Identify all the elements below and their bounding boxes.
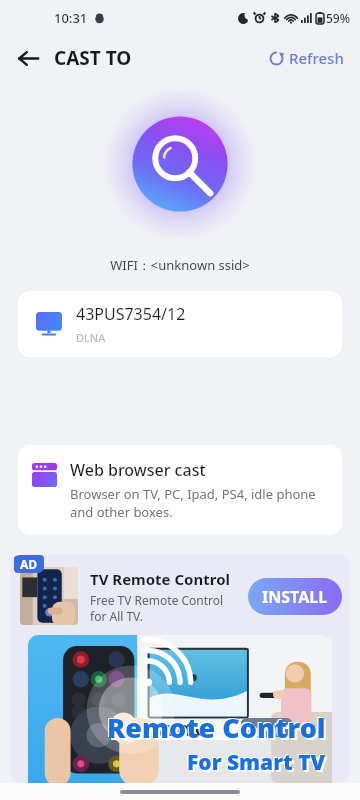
staticText: For Smart TV [187, 748, 326, 777]
staticText: DLNA [76, 330, 106, 345]
staticText: AD [20, 556, 38, 572]
staticText: CAST TO [54, 45, 132, 71]
staticText: Remote Control [106, 708, 325, 745]
button[interactable]: Back [8, 38, 48, 78]
staticText: WIFI：<unknown ssid> [0, 256, 360, 274]
button[interactable]: 43PUS7354/12 [18, 291, 342, 357]
staticText: Web browser cast [70, 459, 206, 481]
staticText: Free TV Remote Control for All TV. [90, 592, 242, 624]
staticText: INSTALL [262, 586, 328, 608]
staticText: 43PUS7354/12 [76, 303, 186, 325]
staticText: Remote Control [109, 711, 328, 748]
staticText: 10:31 [54, 9, 88, 27]
staticText: Remote Control [107, 709, 326, 746]
staticText: For Smart TV [186, 747, 325, 776]
staticText: 59% [326, 10, 350, 26]
button[interactable]: Refresh [265, 44, 348, 72]
staticText: Browser on TV, PC, Ipad, PS4, idle phone… [70, 485, 326, 521]
button[interactable]: TV Remote Control [10, 555, 350, 783]
staticText: TV Remote Control [90, 569, 230, 589]
staticText: Refresh [289, 48, 344, 68]
button[interactable]: INSTALL [248, 578, 342, 615]
staticText: For Smart TV [189, 750, 328, 779]
button[interactable]: Web browser cast [18, 445, 342, 535]
